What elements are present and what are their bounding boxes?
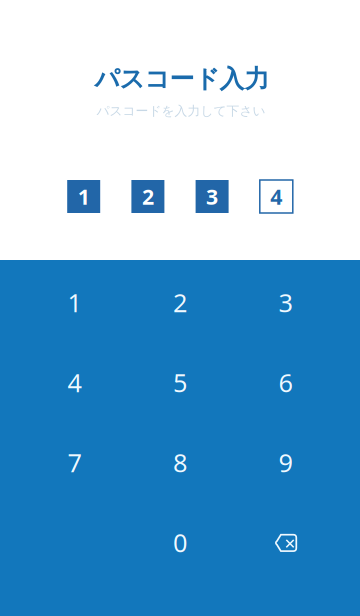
staticText: パスコード入力: [94, 63, 269, 95]
button[interactable]: 6: [233, 342, 338, 422]
button[interactable]: 0: [127, 502, 233, 582]
button[interactable]: 4: [22, 342, 127, 422]
button[interactable]: 4: [260, 180, 293, 213]
button[interactable]: 2: [131, 180, 164, 213]
button[interactable]: 7: [22, 422, 127, 502]
staticText: 8: [173, 446, 187, 479]
staticText: 6: [278, 366, 292, 399]
staticText: 2: [173, 286, 187, 319]
button[interactable]: 8: [127, 422, 233, 502]
staticText: 7: [67, 446, 81, 479]
button[interactable]: 3: [233, 262, 338, 342]
staticText: 4: [67, 366, 81, 399]
staticText: 9: [278, 446, 292, 479]
button[interactable]: 2: [127, 262, 233, 342]
button[interactable]: 9: [233, 422, 338, 502]
staticText: 4: [270, 182, 282, 211]
staticText: 1: [78, 182, 90, 211]
button[interactable]: 5: [127, 342, 233, 422]
staticText: 1: [67, 286, 81, 319]
button[interactable]: Delete: [233, 502, 338, 582]
button[interactable]: 1: [22, 262, 127, 342]
staticText: 0: [173, 526, 187, 559]
staticText: 2: [142, 182, 154, 211]
button[interactable]: 3: [196, 180, 229, 213]
staticText: 5: [173, 366, 187, 399]
staticText: 3: [206, 182, 218, 211]
staticText: パスコードを入力して下さい: [96, 103, 265, 119]
button[interactable]: 1: [67, 180, 100, 213]
staticText: 3: [278, 286, 292, 319]
